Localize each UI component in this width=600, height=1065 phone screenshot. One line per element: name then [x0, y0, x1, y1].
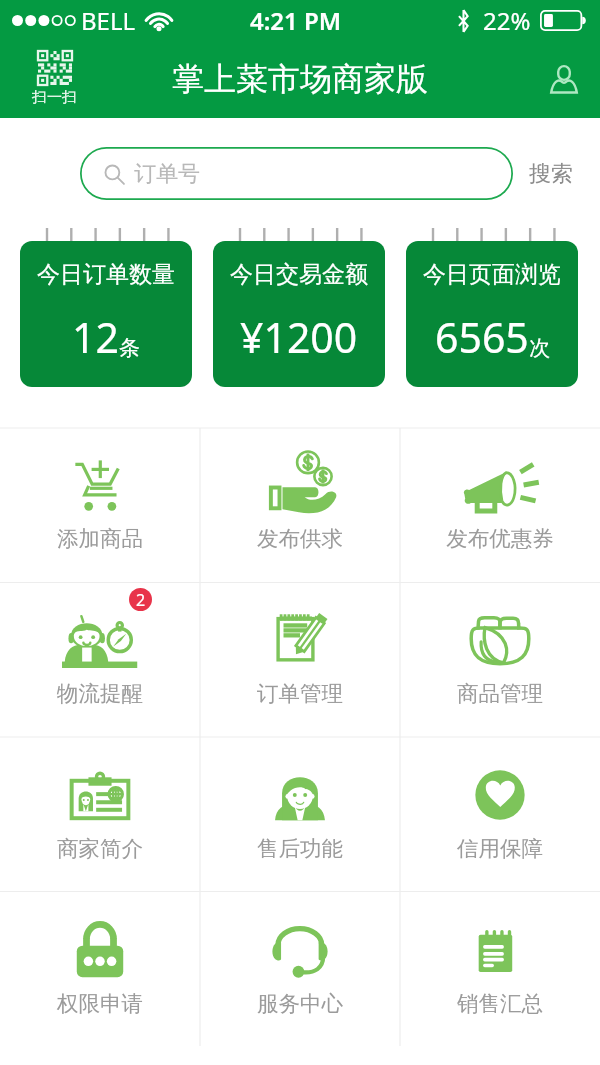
staticText: ¥1200	[240, 309, 358, 365]
button[interactable]: 发布供求	[200, 428, 400, 583]
staticText: 发布供求	[257, 525, 343, 552]
staticText: 商品管理	[457, 680, 543, 707]
staticText: 订单管理	[257, 680, 343, 707]
button[interactable]: 发布优惠券	[400, 428, 600, 583]
button[interactable]: 2	[0, 583, 200, 738]
button[interactable]: 个人中心	[542, 58, 586, 100]
staticText: 物流提醒	[57, 680, 143, 707]
button[interactable]: 权限申请	[0, 893, 200, 1046]
staticText: 4:21 PM	[250, 4, 342, 37]
button[interactable]: 扫一扫	[26, 49, 83, 109]
button[interactable]: 今日页面浏览	[406, 241, 578, 387]
staticText: 订单号	[134, 160, 200, 188]
staticText: 搜索	[529, 160, 573, 188]
button[interactable]: 添加商品	[0, 428, 200, 583]
button[interactable]: 销售汇总	[400, 893, 600, 1046]
button[interactable]: 售后功能	[200, 738, 400, 893]
button[interactable]: 今日订单数量	[20, 241, 192, 387]
staticText: 服务中心	[257, 990, 343, 1017]
staticText: 权限申请	[57, 990, 143, 1017]
staticText: 今日页面浏览	[423, 260, 561, 289]
staticText: 发布优惠券	[446, 525, 554, 552]
staticText: 条	[119, 335, 140, 361]
staticText: 销售汇总	[457, 990, 543, 1017]
staticText: 今日订单数量	[37, 260, 175, 289]
button[interactable]: 搜索	[525, 154, 577, 194]
button[interactable]: 信用保障	[400, 738, 600, 893]
staticText: 2	[136, 589, 146, 611]
button[interactable]: 今日交易金额	[213, 241, 385, 387]
staticText: 今日交易金额	[230, 260, 368, 289]
staticText: 掌上菜市场商家版	[172, 59, 428, 99]
button[interactable]: 商品管理	[400, 583, 600, 738]
staticText: 次	[529, 335, 550, 361]
staticText: 商家简介	[57, 835, 143, 862]
staticText: 售后功能	[257, 835, 343, 862]
staticText: 添加商品	[57, 525, 143, 552]
staticText: 12	[72, 309, 119, 365]
staticText: BELL	[81, 4, 136, 37]
button[interactable]: 订单号	[80, 147, 513, 200]
button[interactable]: 商家简介	[0, 738, 200, 893]
staticText: 扫一扫	[32, 88, 77, 107]
staticText: 6565	[435, 309, 529, 365]
staticText: 22%	[483, 4, 531, 37]
button[interactable]: 服务中心	[200, 893, 400, 1046]
button[interactable]: 订单管理	[200, 583, 400, 738]
staticText: 信用保障	[457, 835, 543, 862]
